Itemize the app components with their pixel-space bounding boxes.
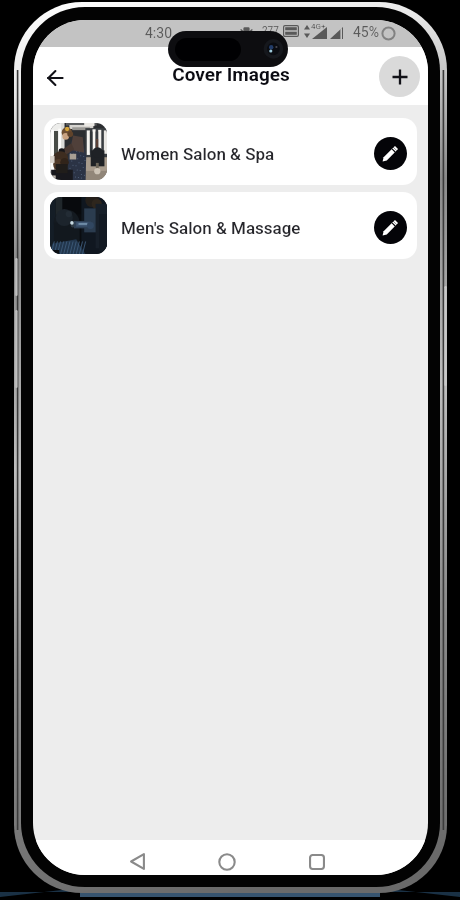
button[interactable]: Back — [33, 56, 77, 100]
staticText: Men's Salon & Massage — [121, 218, 301, 238]
button[interactable]: Back — [119, 844, 155, 875]
button[interactable]: Recents — [299, 844, 335, 875]
staticText: 277 — [262, 25, 279, 37]
staticText: Cover Images — [172, 63, 290, 85]
button[interactable]: Add — [379, 56, 420, 97]
button[interactable]: Men's Salon & Massage — [44, 192, 417, 259]
button[interactable]: Edit — [374, 137, 407, 170]
staticText: 4G+ — [311, 22, 326, 31]
staticText: Women Salon & Spa — [121, 144, 275, 164]
button[interactable]: Women Salon & Spa — [44, 118, 417, 185]
staticText: 45% — [353, 24, 379, 40]
button[interactable]: Home — [209, 844, 245, 875]
button[interactable]: Edit — [374, 211, 407, 244]
staticText: 4:30 — [145, 25, 172, 41]
